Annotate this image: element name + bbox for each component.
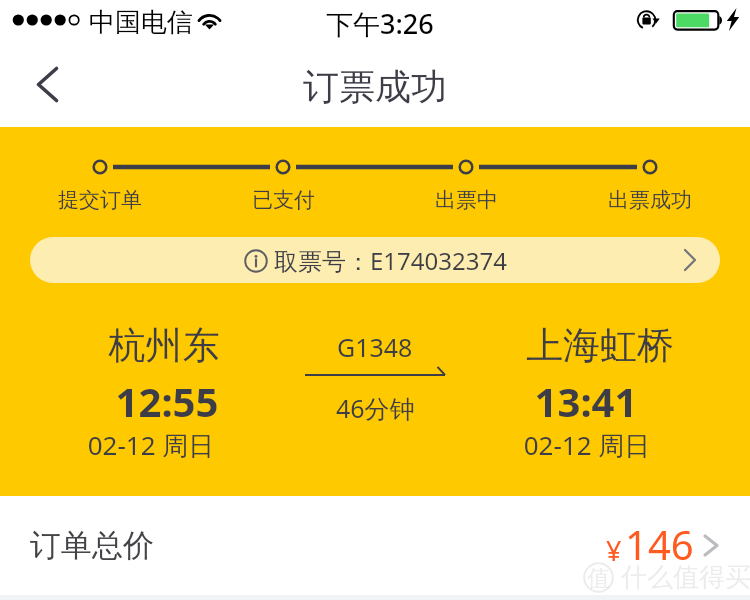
staticText: 02-12 周日 — [477, 427, 697, 463]
staticText: 杭州东 — [54, 322, 274, 369]
staticText: 提交订单 — [58, 187, 142, 213]
staticText: 12:55 — [57, 374, 277, 428]
button[interactable]: 取票号：E174032374 — [30, 237, 720, 283]
staticText: 13:41 — [476, 374, 696, 428]
staticText: 订单总价 — [30, 526, 154, 565]
button[interactable]: 订单总价 — [0, 496, 750, 594]
staticText: 什么值得买 — [621, 561, 750, 594]
staticText: 02-12 周日 — [41, 427, 261, 463]
staticText: ¥ — [606, 532, 622, 569]
staticText: 上海虹桥 — [490, 322, 710, 369]
staticText: 146 — [625, 517, 694, 571]
staticText: 值 — [587, 564, 610, 591]
staticText: 取票号：E174032374 — [274, 244, 507, 277]
staticText: 出票中 — [435, 187, 498, 213]
staticText: G1348 — [337, 330, 413, 364]
staticText: 出票成功 — [608, 187, 692, 213]
staticText: 订票成功 — [303, 64, 447, 109]
staticText: 已支付 — [252, 187, 315, 213]
button[interactable]: Back — [0, 46, 96, 127]
staticText: 中国电信 — [89, 6, 193, 39]
staticText: 下午3:26 — [326, 5, 434, 42]
staticText: 46分钟 — [336, 391, 415, 425]
